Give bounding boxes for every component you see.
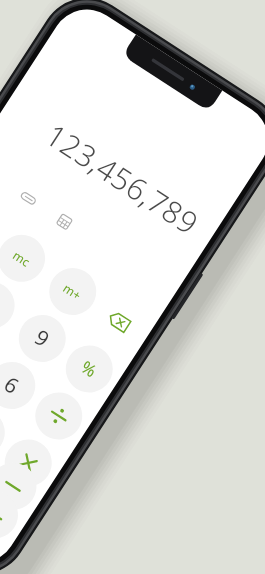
button[interactable]: Calculator app shown on a tilted phone <box>0 0 265 574</box>
